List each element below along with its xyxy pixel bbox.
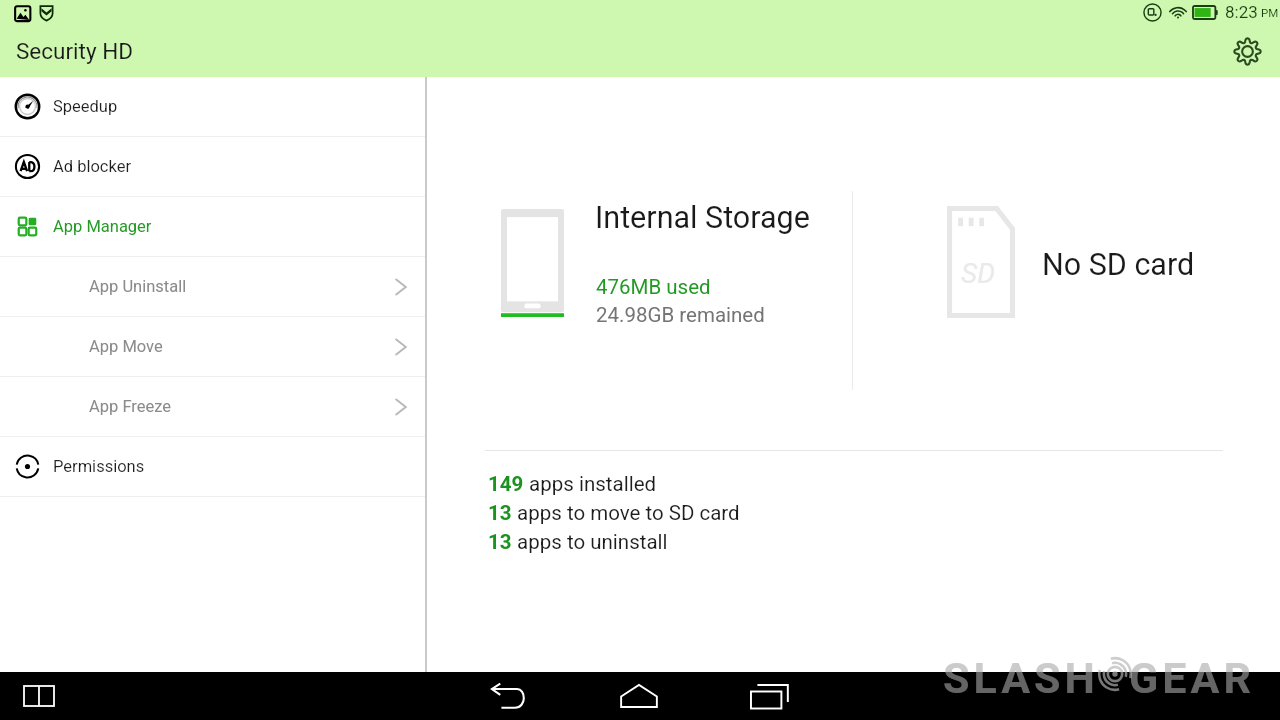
staticText: Security HD — [16, 38, 133, 64]
button[interactable]: App Move — [0, 317, 425, 376]
staticText: apps to uninstall — [512, 530, 668, 554]
staticText: 8:23 — [1225, 2, 1258, 22]
staticText: 13 — [488, 501, 512, 525]
button[interactable]: Recents — [745, 672, 793, 720]
button[interactable]: Back — [485, 672, 533, 720]
staticText: Ad blocker — [53, 157, 132, 176]
button[interactable]: Home — [615, 672, 663, 720]
staticText: Speedup — [53, 97, 118, 116]
button[interactable]: App Freeze — [0, 377, 425, 436]
button[interactable]: Ad blocker — [0, 137, 425, 196]
staticText: GEAR — [1129, 653, 1255, 703]
staticText: App Freeze — [89, 397, 172, 416]
staticText: SLASH — [943, 653, 1099, 703]
staticText: 13 — [488, 530, 512, 554]
button[interactable]: App Manager — [0, 197, 425, 256]
staticText: No SD card — [1042, 247, 1195, 283]
staticText: Internal Storage — [595, 200, 810, 236]
button[interactable]: Permissions — [0, 437, 425, 496]
staticText: App Uninstall — [89, 277, 187, 296]
staticText: App Move — [89, 337, 163, 356]
staticText: App Manager — [53, 217, 152, 236]
staticText: Permissions — [53, 457, 145, 476]
button[interactable]: Settings — [1226, 30, 1268, 72]
button[interactable]: Speedup — [0, 77, 425, 136]
staticText: SD — [961, 257, 995, 290]
staticText: 149 — [488, 472, 524, 496]
staticText: apps installed — [524, 472, 657, 496]
staticText: 476MB used — [596, 275, 711, 299]
staticText: PM — [1261, 6, 1279, 19]
staticText: apps to move to SD card — [512, 501, 740, 525]
staticText: 24.98GB remained — [596, 303, 765, 327]
button[interactable]: App Uninstall — [0, 257, 425, 316]
button[interactable]: Split screen — [19, 676, 59, 716]
